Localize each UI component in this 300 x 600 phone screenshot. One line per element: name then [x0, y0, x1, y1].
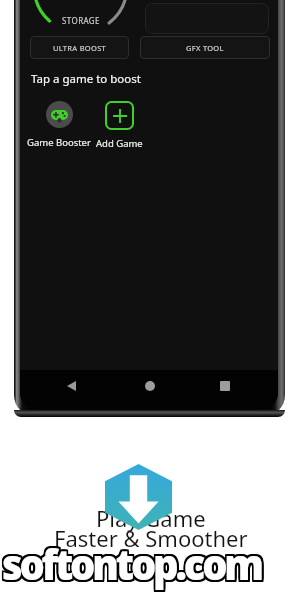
staticText: softontop.com: [2, 532, 261, 591]
staticText: softontop.com: [3, 533, 262, 592]
button[interactable]: ULTRA BOOST: [30, 36, 129, 59]
staticText: Game Booster: [27, 136, 91, 149]
button[interactable]: Back: [58, 373, 84, 399]
staticText: ULTRA BOOST: [53, 43, 107, 53]
button[interactable]: Home: [137, 373, 163, 399]
staticText: Tap a game to boost: [31, 71, 141, 87]
staticText: softontop.com: [0, 536, 259, 595]
staticText: softontop.com: [0, 532, 259, 591]
staticText: Faster & Smoother: [54, 523, 248, 553]
staticText: softontop.com: [0, 534, 259, 593]
staticText: softontop.com: [4, 535, 263, 594]
staticText: softontop.com: [1, 532, 260, 591]
staticText: softontop.com: [1, 533, 260, 592]
staticText: softontop.com: [3, 536, 262, 595]
staticText: softontop.com: [2, 534, 261, 593]
button[interactable]: Recents: [212, 373, 238, 399]
staticText: softontop.com: [1, 534, 260, 593]
button[interactable]: GFX TOOL: [140, 36, 270, 59]
staticText: softontop.com: [2, 535, 261, 594]
staticText: Add Game: [96, 137, 143, 150]
staticText: softontop.com: [2, 533, 261, 592]
staticText: softontop.com: [1, 536, 260, 595]
staticText: softontop.com: [3, 532, 262, 591]
staticText: softontop.com: [2, 536, 261, 595]
staticText: softontop.com: [0, 535, 259, 594]
staticText: softontop.com: [4, 532, 263, 591]
staticText: STORAGE: [62, 15, 100, 26]
staticText: softontop.com: [0, 533, 259, 592]
staticText: softontop.com: [3, 535, 262, 594]
staticText: softontop.com: [1, 535, 260, 594]
button[interactable]: Game Booster: [26, 101, 92, 149]
staticText: Play Game: [96, 503, 206, 533]
staticText: softontop.com: [4, 534, 263, 593]
button[interactable]: Add Game: [92, 101, 147, 150]
staticText: softontop.com: [4, 536, 263, 595]
staticText: softontop.com: [4, 533, 263, 592]
staticText: GFX TOOL: [186, 43, 224, 53]
staticText: softontop.com: [3, 534, 262, 593]
